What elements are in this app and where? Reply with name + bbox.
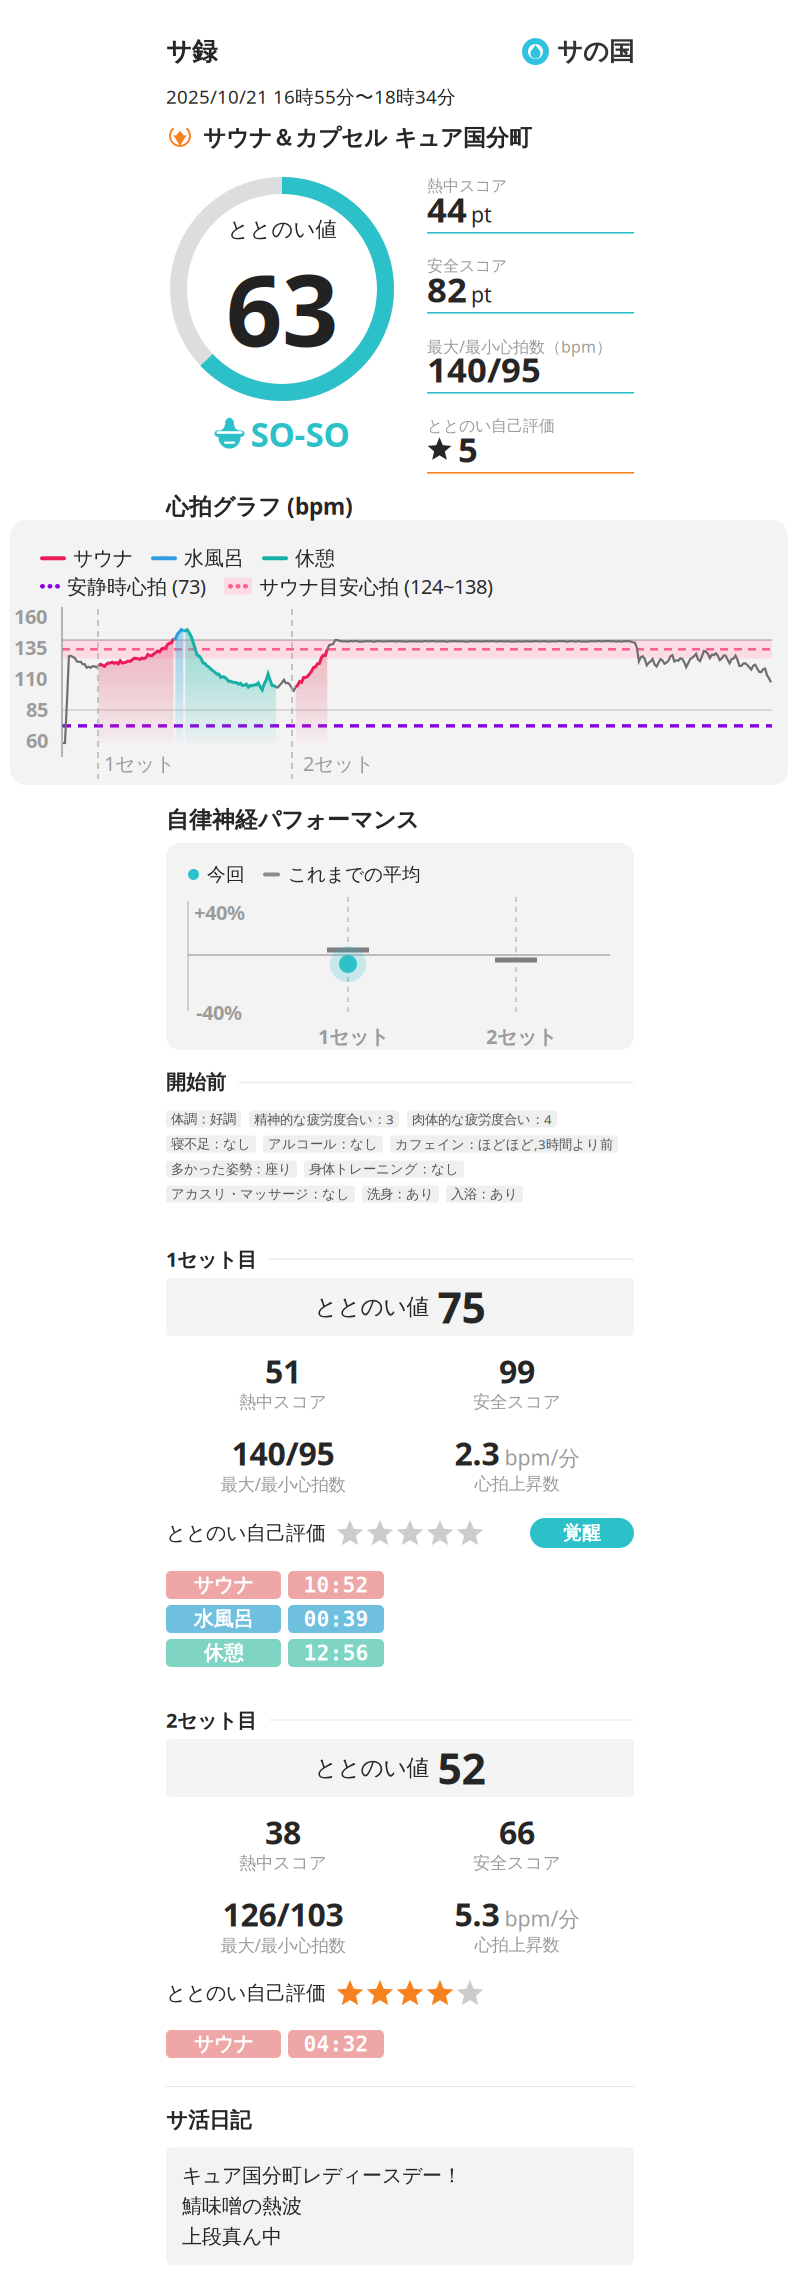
staticText: 2セット — [486, 1023, 557, 1050]
staticText: 10:52 — [303, 1573, 368, 1597]
staticText: 110 — [14, 665, 47, 692]
staticText: サ活日記 — [166, 2107, 251, 2133]
staticText: 2025/10/21 16時55分〜18時34分 — [166, 84, 456, 109]
staticText: 洗身：あり — [367, 1186, 434, 1202]
staticText: 12:56 — [303, 1641, 368, 1665]
staticText: 85 — [26, 696, 48, 723]
staticText: 安静時心拍 (73) — [67, 573, 206, 600]
staticText: キュア国分町レディースデー！ — [182, 2163, 462, 2188]
staticText: 安全スコア — [427, 256, 507, 276]
staticText: サウナ＆カプセル キュア国分町 — [203, 124, 532, 152]
staticText: 126/103 — [222, 1893, 343, 1935]
staticText: ととのい値 — [227, 216, 336, 243]
staticText: サウナ — [73, 546, 133, 571]
staticText: 安全スコア — [473, 1852, 561, 1874]
button[interactable]: サの国 ロゴ — [522, 36, 634, 67]
staticText: 上段真ん中 — [182, 2224, 282, 2249]
staticText: ととのい自己評価 — [166, 1521, 326, 1545]
staticText: 1セット — [104, 750, 175, 777]
staticText: 5 — [458, 426, 478, 472]
staticText: 鯖味噌の熱波 — [182, 2194, 302, 2218]
staticText: ととのい自己評価 — [427, 416, 555, 436]
staticText: pt — [471, 280, 492, 308]
staticText: 38 — [265, 1811, 301, 1853]
staticText: 覚醒 — [563, 1521, 601, 1544]
staticText: 135 — [14, 634, 47, 661]
staticText: 心拍グラフ (bpm) — [166, 491, 353, 521]
staticText: アカスリ・マッサージ：なし — [171, 1186, 350, 1202]
staticText: 00:39 — [303, 1607, 368, 1631]
staticText: 開始前 — [166, 1070, 226, 1095]
staticText: 60 — [26, 727, 48, 754]
staticText: pt — [471, 200, 492, 228]
staticText: 1セット — [318, 1023, 389, 1050]
staticText: 心拍上昇数 — [474, 1934, 559, 1956]
staticText: 安全スコア — [473, 1391, 561, 1413]
staticText: 熱中スコア — [239, 1852, 327, 1874]
staticText: 水風呂 — [193, 1607, 253, 1631]
staticText: 160 — [14, 603, 47, 630]
staticText: 精神的な疲労度合い：3 — [254, 1110, 394, 1128]
staticText: 身体トレーニング：なし — [309, 1161, 459, 1177]
staticText: 2.3 — [454, 1432, 499, 1474]
staticText: サウナ — [193, 2032, 253, 2056]
staticText: 寝不足：なし — [171, 1136, 251, 1152]
staticText: 63 — [226, 243, 338, 374]
staticText: 心拍上昇数 — [474, 1473, 559, 1495]
staticText: 75 — [437, 1279, 485, 1335]
staticText: 水風呂 — [184, 546, 244, 571]
staticText: 休憩 — [295, 546, 335, 571]
staticText: 140/95 — [231, 1432, 334, 1474]
staticText: サ録 — [166, 36, 217, 67]
staticText: 51 — [265, 1350, 301, 1392]
staticText: サウナ目安心拍 (124~138) — [259, 573, 493, 600]
staticText: 体調：好調 — [171, 1111, 236, 1127]
staticText: 熱中スコア — [239, 1391, 327, 1413]
staticText: これまでの平均 — [288, 863, 421, 886]
staticText: 2セット目 — [166, 1707, 257, 1733]
staticText: SO-SO — [250, 412, 349, 456]
staticText: 1セット目 — [166, 1246, 257, 1272]
staticText: 熱中スコア — [427, 176, 507, 196]
staticText: 肉体的な疲労度合い：4 — [412, 1110, 552, 1128]
staticText: 2セット — [303, 750, 374, 777]
staticText: 04:32 — [303, 2032, 368, 2056]
button[interactable]: 覚醒 — [530, 1518, 634, 1548]
staticText: +40% — [194, 899, 245, 926]
staticText: アルコール：なし — [268, 1136, 378, 1152]
staticText: 最大/最小心拍数 — [220, 1933, 345, 1956]
staticText: ととのい値 — [314, 1293, 429, 1321]
staticText: 82 — [427, 266, 467, 312]
staticText: 今回 — [207, 863, 245, 886]
staticText: bpm/分 — [504, 1904, 579, 1932]
staticText: 44 — [427, 186, 467, 232]
staticText: ととのい値 — [314, 1754, 429, 1782]
staticText: 入浴：あり — [451, 1186, 518, 1202]
staticText: ととのい自己評価 — [166, 1981, 326, 2005]
staticText: 66 — [499, 1811, 535, 1853]
staticText: 自律神経パフォーマンス — [166, 806, 419, 834]
staticText: 最大/最小心拍数（bpm） — [427, 336, 612, 357]
staticText: 99 — [499, 1350, 535, 1392]
staticText: 多かった姿勢：座り — [171, 1161, 292, 1177]
staticText: 最大/最小心拍数 — [220, 1472, 345, 1495]
staticText: サの国 — [557, 36, 634, 67]
staticText: カフェイン：ほどほど,3時間より前 — [395, 1135, 613, 1153]
staticText: 52 — [437, 1740, 485, 1796]
staticText: サウナ — [193, 1573, 253, 1597]
staticText: 休憩 — [203, 1641, 243, 1665]
staticText: bpm/分 — [504, 1443, 579, 1471]
staticText: 140/95 — [427, 346, 541, 392]
staticText: -40% — [196, 999, 242, 1026]
staticText: 5.3 — [454, 1893, 499, 1935]
